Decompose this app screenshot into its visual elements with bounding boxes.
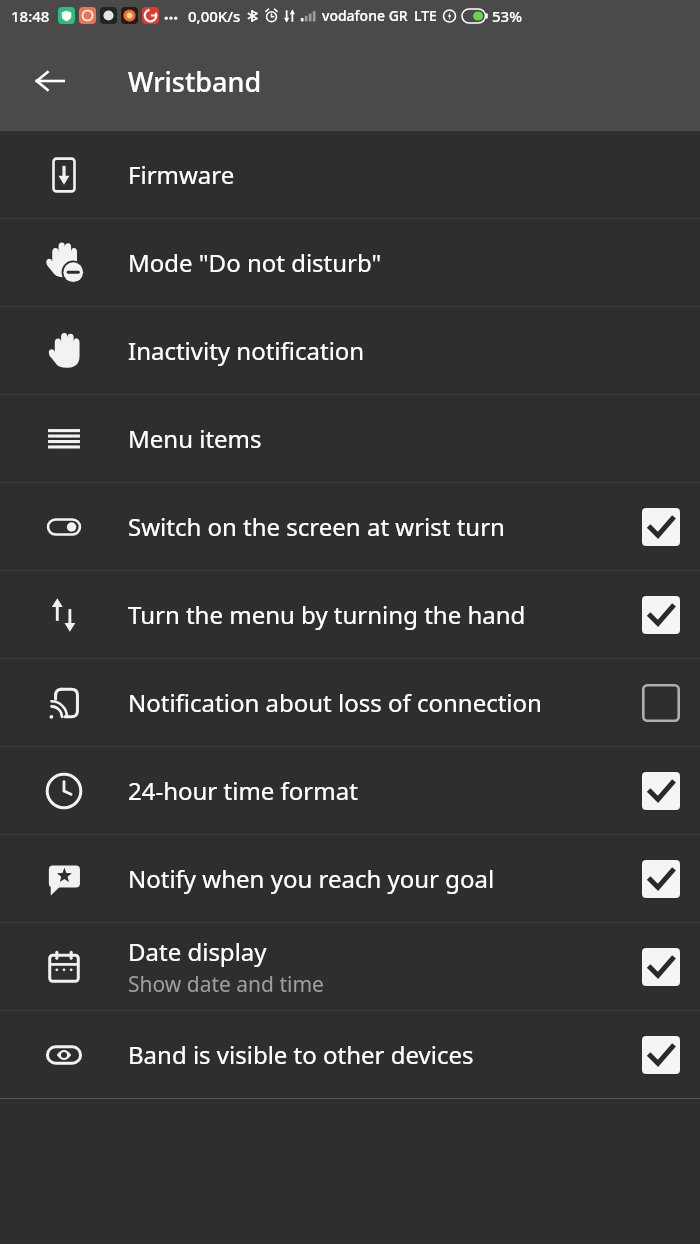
staticText: Switch on the screen at wrist turn	[128, 510, 505, 543]
staticText: Show date and time	[128, 970, 324, 999]
button[interactable]: Firmware	[0, 131, 700, 218]
button[interactable]: Notify when you reach your goal	[0, 835, 700, 922]
button[interactable]: Switch on the screen at wrist turn	[0, 483, 700, 570]
button[interactable]: 24-hour time format	[0, 747, 700, 834]
staticText: 18:48	[11, 6, 50, 26]
staticText: 53%	[492, 6, 522, 26]
button[interactable]: Turn the menu by turning the hand	[0, 571, 700, 658]
staticText: LTE	[414, 6, 437, 25]
button[interactable]: Menu items	[0, 395, 700, 482]
staticText: 0,00K/s	[188, 6, 241, 26]
staticText: Turn the menu by turning the hand	[128, 598, 526, 631]
staticText: vodafone GR	[322, 6, 408, 25]
button[interactable]: Band is visible to other devices	[0, 1011, 700, 1098]
button[interactable]: Date display	[0, 923, 700, 1010]
button[interactable]: Back	[20, 51, 80, 111]
staticText: Date display	[128, 935, 267, 968]
button[interactable]: Mode "Do not disturb"	[0, 219, 700, 306]
staticText: 24-hour time format	[128, 774, 358, 807]
staticText: Wristband	[128, 63, 262, 100]
button[interactable]: Inactivity notification	[0, 307, 700, 394]
staticText: Menu items	[128, 422, 262, 455]
staticText: Mode "Do not disturb"	[128, 246, 382, 279]
staticText: Inactivity notification	[128, 334, 365, 367]
staticText: Band is visible to other devices	[128, 1038, 474, 1071]
staticText: Firmware	[128, 158, 235, 191]
staticText: Notification about loss of connection	[128, 686, 542, 719]
button[interactable]: Notification about loss of connection	[0, 659, 700, 746]
staticText: Notify when you reach your goal	[128, 862, 495, 895]
